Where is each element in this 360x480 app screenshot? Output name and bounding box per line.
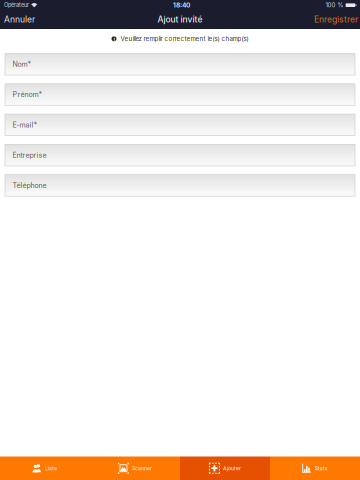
button[interactable]: Prénom* bbox=[5, 84, 355, 105]
staticText: Veuillez remplir correctement le(s) cham… bbox=[120, 35, 248, 42]
staticText: Entreprise bbox=[12, 151, 46, 159]
staticText: Téléphone bbox=[12, 181, 46, 190]
button[interactable]: Entreprise bbox=[5, 144, 355, 166]
staticText: Prénom* bbox=[12, 90, 42, 99]
button[interactable]: Stats bbox=[270, 456, 360, 480]
staticText: Annuler bbox=[4, 14, 35, 25]
button[interactable]: Téléphone bbox=[5, 175, 355, 196]
button[interactable]: E-mail* bbox=[5, 114, 355, 136]
staticText: 100 % bbox=[325, 1, 343, 9]
button[interactable]: Scanner bbox=[90, 456, 180, 480]
staticText: Ajout invité bbox=[157, 14, 202, 25]
button[interactable]: Annuler bbox=[0, 10, 41, 29]
staticText: E-mail* bbox=[12, 121, 37, 129]
button[interactable]: Nom* bbox=[5, 53, 355, 75]
staticText: Nom* bbox=[12, 60, 31, 68]
staticText: Enregistrer bbox=[314, 14, 358, 25]
staticText: Stats bbox=[315, 465, 328, 471]
staticText: Scanner bbox=[132, 465, 152, 471]
staticText: 18:40 bbox=[173, 1, 190, 9]
button[interactable]: Liste bbox=[0, 456, 90, 480]
staticText: Ajouter bbox=[223, 465, 241, 471]
button[interactable]: Ajouter bbox=[180, 456, 270, 480]
staticText: Liste bbox=[45, 465, 57, 471]
staticText: Opérateur bbox=[4, 2, 29, 8]
button[interactable]: Enregistrer bbox=[308, 10, 360, 29]
